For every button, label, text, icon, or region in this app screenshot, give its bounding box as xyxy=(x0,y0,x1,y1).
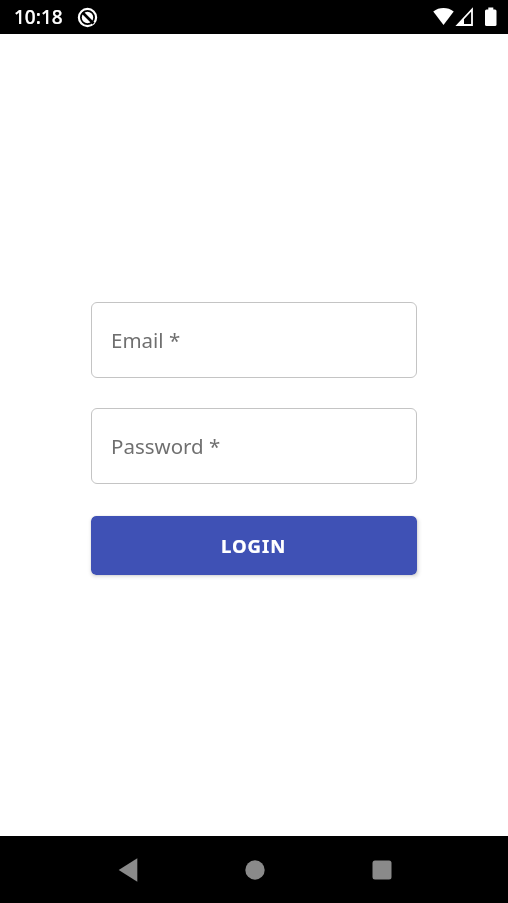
staticText: Email * xyxy=(111,326,181,354)
button[interactable]: Email * xyxy=(91,302,417,378)
button[interactable]: Password * xyxy=(91,408,417,484)
button[interactable]: LOGIN xyxy=(91,516,417,575)
staticText: LOGIN xyxy=(221,533,287,558)
button[interactable] xyxy=(191,836,318,903)
button[interactable] xyxy=(64,836,191,903)
button[interactable] xyxy=(318,836,445,903)
staticText: 10:18 xyxy=(14,4,63,30)
staticText: Password * xyxy=(111,432,221,460)
